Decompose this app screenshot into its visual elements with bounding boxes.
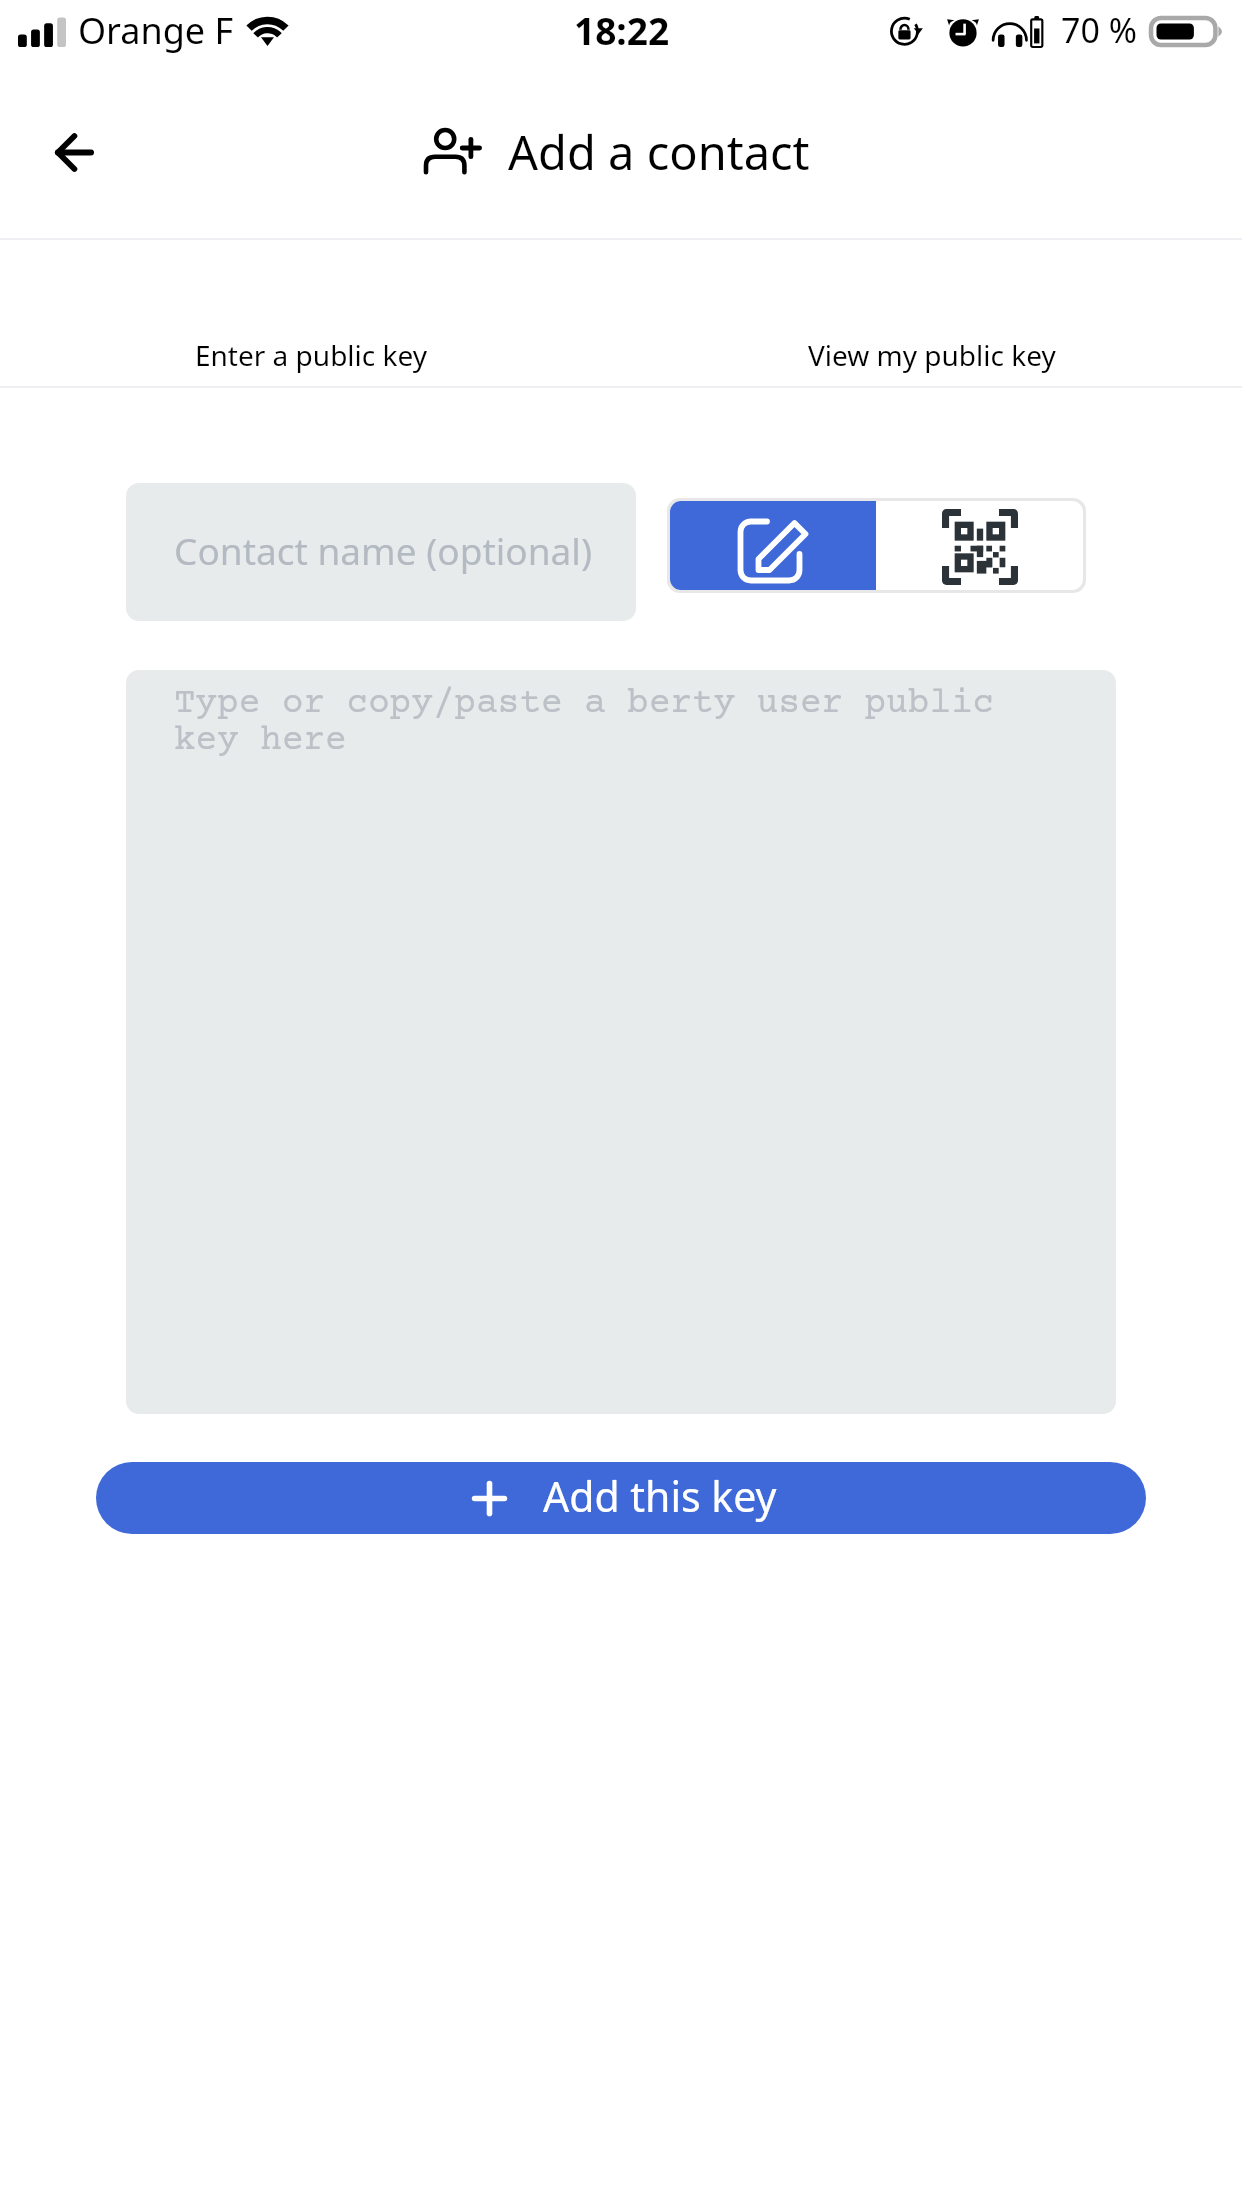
button[interactable]: Scan QR code xyxy=(876,501,1083,590)
staticText: Type or copy/paste a berty user public k… xyxy=(174,684,1004,761)
button[interactable]: Enter a public key xyxy=(0,240,621,386)
staticText: Orange F xyxy=(78,6,234,55)
button[interactable]: Type or copy/paste a berty user public k… xyxy=(126,670,1116,1414)
button[interactable]: View my public key xyxy=(621,240,1242,386)
button[interactable]: Add this key xyxy=(96,1462,1146,1534)
button[interactable]: Back xyxy=(36,114,112,190)
staticText: Enter a public key xyxy=(195,336,427,374)
staticText: Contact name (optional) xyxy=(174,525,592,575)
button[interactable]: Contact name (optional) xyxy=(126,483,636,621)
staticText: Add this key xyxy=(543,1468,777,1524)
staticText: 70 % xyxy=(1061,7,1137,53)
staticText: Add a contact xyxy=(508,120,810,184)
button[interactable]: Enter public key manually xyxy=(670,501,876,590)
staticText: View my public key xyxy=(808,336,1056,374)
staticText: 18:22 xyxy=(574,5,670,55)
